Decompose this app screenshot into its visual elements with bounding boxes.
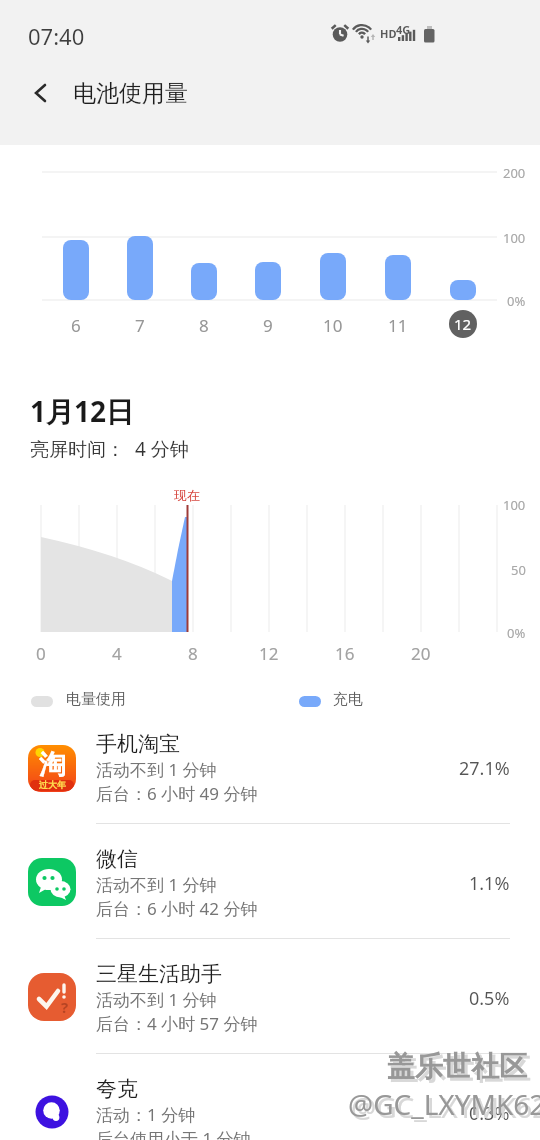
staticText: 9 bbox=[263, 314, 273, 337]
staticText: 50 bbox=[511, 561, 526, 579]
staticText: 活动不到 1 分钟 bbox=[96, 758, 217, 781]
staticText: 10 bbox=[323, 314, 343, 337]
staticText: 8 bbox=[188, 642, 198, 665]
staticText: 夸克 bbox=[96, 1076, 138, 1102]
staticText: HD bbox=[380, 26, 397, 41]
button[interactable]: 三星生活助手 bbox=[0, 939, 540, 1054]
staticText: 活动：1 分钟 bbox=[96, 1103, 196, 1126]
staticText: 0 bbox=[36, 642, 46, 665]
staticText: 12 bbox=[259, 642, 279, 665]
button[interactable]: 12 bbox=[449, 310, 477, 338]
staticText: 0% bbox=[507, 624, 526, 642]
staticText: 0.3% bbox=[469, 1101, 510, 1126]
staticText: 盖乐世社区 bbox=[387, 1049, 527, 1084]
staticText: 微信 bbox=[96, 846, 138, 872]
staticText: 07:40 bbox=[28, 21, 85, 51]
staticText: 活动不到 1 分钟 bbox=[96, 873, 217, 896]
staticText: 盖乐世社区 bbox=[390, 1052, 530, 1087]
staticText: 20 bbox=[411, 642, 431, 665]
staticText: 4 bbox=[112, 642, 122, 665]
staticText: 12 bbox=[454, 314, 472, 334]
button[interactable] bbox=[32, 84, 50, 102]
staticText: 1月12日 bbox=[30, 392, 135, 430]
staticText: ? bbox=[61, 997, 69, 1017]
staticText: 1.1% bbox=[469, 871, 510, 896]
staticText: 电池使用量 bbox=[73, 79, 188, 108]
staticText: 手机淘宝 bbox=[96, 731, 180, 757]
staticText: @GC_LXYMK62 bbox=[348, 1085, 540, 1123]
staticText: 8 bbox=[199, 314, 209, 337]
staticText: 0.5% bbox=[469, 986, 510, 1011]
staticText: 后台使用小于 1 分钟 bbox=[96, 1127, 251, 1140]
staticText: 6 bbox=[71, 314, 81, 337]
staticText: 现在 bbox=[174, 487, 200, 503]
staticText: 充电 bbox=[333, 690, 363, 709]
staticText: 后台：4 小时 57 分钟 bbox=[96, 1012, 258, 1035]
staticText: 活动不到 1 分钟 bbox=[96, 988, 217, 1011]
staticText: 16 bbox=[335, 642, 355, 665]
button[interactable]: 微信 bbox=[0, 824, 540, 939]
staticText: 27.1% bbox=[459, 756, 510, 781]
button[interactable]: 夸克 bbox=[0, 1054, 540, 1140]
staticText: 淘 bbox=[39, 748, 66, 782]
button[interactable]: 手机淘宝 bbox=[0, 709, 540, 824]
staticText: 4G bbox=[396, 22, 411, 37]
staticText: 100 bbox=[503, 229, 526, 247]
staticText: 100 bbox=[503, 496, 526, 514]
staticText: 7 bbox=[135, 314, 145, 337]
staticText: 后台：6 小时 42 分钟 bbox=[96, 897, 258, 920]
staticText: 三星生活助手 bbox=[96, 961, 222, 987]
staticText: 电量使用 bbox=[66, 690, 126, 709]
staticText: 后台：6 小时 49 分钟 bbox=[96, 782, 258, 805]
staticText: 11 bbox=[388, 314, 408, 337]
staticText: 亮屏时间： 4 分钟 bbox=[30, 436, 189, 462]
staticText: @GC_LXYMK62 bbox=[351, 1088, 540, 1126]
staticText: 200 bbox=[503, 164, 526, 182]
staticText: 过大年 bbox=[39, 779, 66, 790]
staticText: 0% bbox=[507, 292, 526, 310]
